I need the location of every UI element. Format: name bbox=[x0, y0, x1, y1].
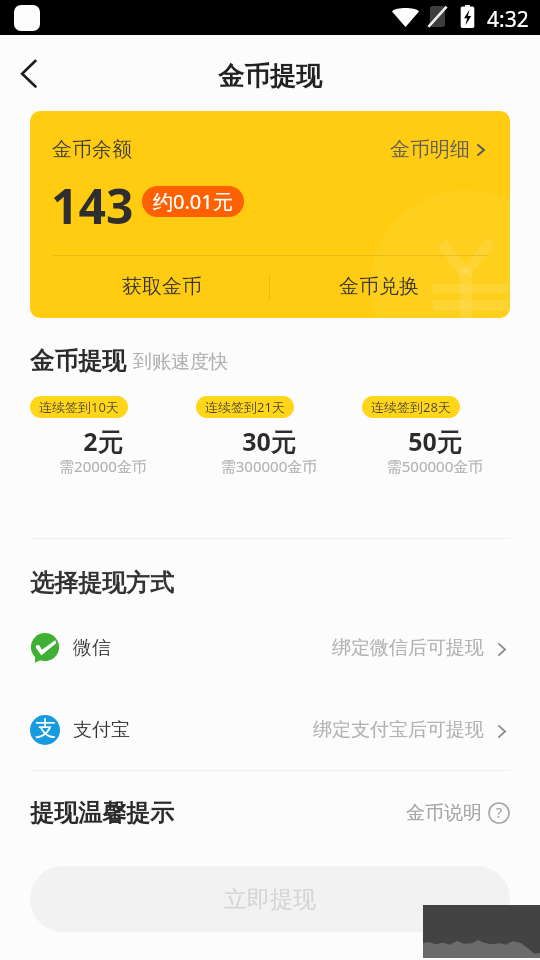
button[interactable]: 金币明细 bbox=[390, 137, 485, 162]
staticText: 选择提现方式 bbox=[30, 568, 174, 598]
staticText: 50元 bbox=[352, 424, 518, 458]
button[interactable]: 约0.01元 bbox=[142, 186, 244, 217]
staticText: 到账速度快 bbox=[133, 350, 228, 374]
staticText: 需500000金币 bbox=[352, 456, 518, 476]
staticText: 获取金币 bbox=[122, 274, 202, 299]
staticText: 金币余额 bbox=[52, 137, 132, 162]
button[interactable]: 支 bbox=[0, 706, 540, 754]
staticText: 连续签到21天 bbox=[205, 398, 285, 416]
staticText: 金币提现 bbox=[218, 60, 322, 93]
button[interactable]: 连续签到21天 bbox=[196, 396, 294, 418]
button[interactable]: 立即提现 bbox=[30, 866, 510, 932]
staticText: 连续签到28天 bbox=[371, 398, 451, 416]
button[interactable]: 金币兑换 bbox=[270, 255, 488, 318]
staticText: 30元 bbox=[186, 424, 352, 458]
staticText: 立即提现 bbox=[224, 885, 316, 914]
button[interactable]: Back bbox=[3, 48, 55, 100]
staticText: ? bbox=[496, 803, 503, 822]
staticText: 绑定支付宝后可提现 bbox=[313, 718, 484, 742]
staticText: 需300000金币 bbox=[186, 456, 352, 476]
staticText: 绑定微信后可提现 bbox=[332, 636, 484, 660]
button[interactable]: 连续签到10天 bbox=[30, 396, 128, 418]
staticText: 金币明细 bbox=[390, 137, 470, 162]
button[interactable]: 金币说明 bbox=[406, 801, 510, 825]
staticText: 金币提现 bbox=[30, 346, 126, 376]
button[interactable]: 获取金币 bbox=[53, 255, 270, 318]
staticText: 提现温馨提示 bbox=[30, 798, 174, 828]
staticText: 支付宝 bbox=[73, 718, 130, 742]
staticText: 需20000金币 bbox=[20, 456, 186, 476]
button[interactable]: 连续签到28天 bbox=[362, 396, 460, 418]
staticText: 4:32 bbox=[487, 5, 529, 34]
staticText: 约0.01元 bbox=[153, 188, 233, 215]
staticText: 2元 bbox=[20, 424, 186, 458]
staticText: 143 bbox=[51, 173, 134, 238]
staticText: 微信 bbox=[73, 636, 111, 660]
staticText: 支 bbox=[35, 716, 56, 742]
staticText: 金币兑换 bbox=[339, 274, 419, 299]
staticText: 金币说明 bbox=[406, 801, 482, 825]
button[interactable]: 微信 bbox=[0, 624, 540, 672]
staticText: 连续签到10天 bbox=[39, 398, 119, 416]
